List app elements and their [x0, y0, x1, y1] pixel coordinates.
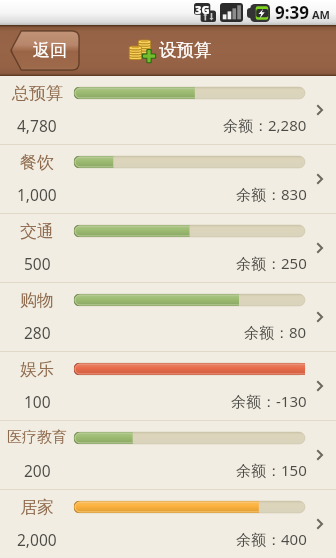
staticText: 余额：150: [236, 460, 307, 480]
staticText: 200: [24, 460, 51, 481]
button[interactable]: 居家: [0, 490, 336, 558]
staticText: 设预算: [159, 39, 212, 61]
staticText: 2,000: [17, 529, 57, 550]
button[interactable]: 总预算: [0, 76, 336, 144]
staticText: 3G: [195, 2, 210, 17]
button[interactable]: 购物: [0, 283, 336, 351]
staticText: 余额：2,280: [223, 115, 307, 135]
button[interactable]: 返回: [10, 30, 80, 71]
staticText: 返回: [33, 40, 67, 61]
button[interactable]: 交通: [0, 214, 336, 282]
staticText: 余额：80: [244, 322, 307, 342]
staticText: 9:39: [275, 1, 309, 24]
staticText: 交通: [20, 221, 54, 242]
staticText: 居家: [20, 497, 54, 518]
staticText: 1,000: [17, 184, 57, 205]
button[interactable]: 医疗教育: [0, 421, 336, 489]
staticText: 餐饮: [20, 152, 54, 173]
staticText: 余额：-130: [231, 391, 307, 411]
staticText: 500: [24, 253, 51, 274]
staticText: 余额：830: [236, 184, 307, 204]
staticText: 100: [24, 391, 51, 412]
staticText: 总预算: [12, 83, 63, 104]
staticText: 280: [24, 322, 51, 343]
staticText: 购物: [20, 290, 54, 311]
staticText: 余额：400: [236, 529, 307, 549]
button[interactable]: 餐饮: [0, 145, 336, 213]
staticText: 医疗教育: [7, 428, 67, 447]
staticText: 4,780: [17, 115, 57, 136]
staticText: AM: [312, 7, 330, 22]
button[interactable]: 娱乐: [0, 352, 336, 420]
staticText: 娱乐: [20, 359, 54, 380]
staticText: 余额：250: [236, 253, 307, 273]
